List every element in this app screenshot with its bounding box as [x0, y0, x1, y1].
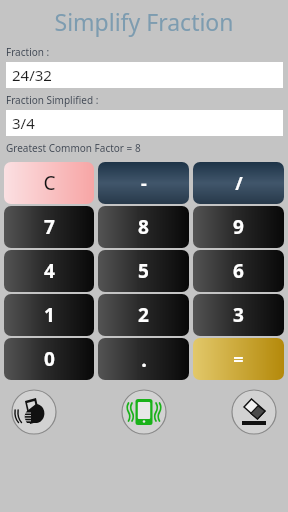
button[interactable]: 6 — [193, 250, 284, 292]
staticText: 2 — [138, 302, 149, 328]
staticText: 9 — [233, 214, 244, 240]
staticText: 24/32 — [12, 65, 52, 85]
staticText: 0 — [44, 346, 55, 372]
staticText: Simplify Fraction — [0, 6, 288, 37]
staticText: Greatest Common Factor = 8 — [6, 141, 141, 155]
staticText: - — [141, 171, 147, 196]
staticText: 3/4 — [12, 113, 35, 133]
button[interactable]: 5 — [98, 250, 189, 292]
staticText: 6 — [233, 258, 244, 284]
button[interactable]: 8 — [98, 206, 189, 248]
button[interactable]: - — [98, 162, 189, 204]
staticText: 1 — [44, 302, 55, 328]
button[interactable]: 9 — [193, 206, 284, 248]
button[interactable]: Shake to calculate — [10, 388, 58, 436]
staticText: = — [233, 347, 244, 372]
staticText: 3 — [233, 302, 244, 328]
staticText: 8 — [138, 214, 149, 240]
staticText: 7 — [44, 214, 55, 240]
button[interactable]: 24/32 — [6, 62, 283, 88]
button[interactable]: C — [4, 162, 94, 204]
staticText: Fraction Simplified : — [6, 93, 99, 107]
staticText: 4 — [44, 258, 55, 284]
button[interactable]: 7 — [4, 206, 94, 248]
button[interactable]: . — [98, 338, 189, 380]
button[interactable]: Clear — [230, 388, 278, 436]
button[interactable]: Vibrate — [120, 388, 168, 436]
button[interactable]: 3 — [193, 294, 284, 336]
button[interactable]: 4 — [4, 250, 94, 292]
button[interactable]: = — [193, 338, 284, 380]
button[interactable]: 0 — [4, 338, 94, 380]
button[interactable]: / — [193, 162, 284, 204]
staticText: Fraction : — [6, 45, 50, 59]
staticText: C — [43, 170, 56, 196]
staticText: . — [141, 346, 147, 373]
staticText: 5 — [138, 258, 149, 284]
button[interactable]: 3/4 — [6, 110, 283, 136]
button[interactable]: 1 — [4, 294, 94, 336]
button[interactable]: 2 — [98, 294, 189, 336]
staticText: / — [235, 171, 243, 196]
